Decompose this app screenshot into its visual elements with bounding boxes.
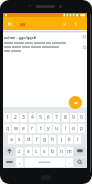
button[interactable]: [4, 158, 15, 167]
button[interactable]: v: [41, 147, 48, 156]
button[interactable]: l: [74, 135, 81, 144]
button[interactable]: [3, 17, 87, 30]
staticText: i: [65, 125, 67, 132]
button[interactable]: g: [41, 135, 48, 144]
staticText: 5: [39, 114, 42, 121]
button[interactable]: f: [33, 135, 40, 144]
button[interactable]: 0: [78, 113, 85, 122]
button[interactable]: [69, 96, 82, 109]
staticText: 2: [14, 114, 17, 121]
button[interactable]: 8: [62, 113, 69, 122]
button[interactable]: 4: [29, 113, 36, 122]
button[interactable]: w: [12, 124, 19, 133]
staticText: q: [6, 125, 10, 132]
staticText: j: [61, 136, 63, 143]
button[interactable]: ,: [16, 158, 23, 167]
staticText: o: [72, 125, 76, 132]
button[interactable]: b: [49, 147, 56, 156]
staticText: y: [47, 125, 50, 132]
staticText: u: [55, 125, 59, 132]
staticText: n: [60, 148, 64, 155]
button[interactable]: o: [70, 124, 77, 133]
button[interactable]: d: [25, 135, 32, 144]
staticText: e: [22, 125, 25, 132]
button[interactable]: j: [58, 135, 65, 144]
staticText: r: [31, 125, 34, 132]
staticText: b: [51, 148, 55, 155]
staticText: 7: [55, 114, 58, 121]
staticText: 3: [22, 114, 25, 121]
staticText: ,: [19, 159, 21, 166]
button[interactable]: n: [58, 147, 65, 156]
staticText: z: [18, 148, 21, 155]
staticText: d: [27, 136, 31, 143]
button[interactable]: s: [16, 135, 23, 144]
staticText: .: [69, 159, 71, 166]
staticText: zolme - ggc/qqcb: [4, 35, 37, 40]
staticText: 8: [64, 114, 67, 121]
button[interactable]: 7: [53, 113, 60, 122]
button[interactable]: z: [16, 147, 23, 156]
button[interactable]: 6: [45, 113, 52, 122]
staticText: m: [67, 148, 72, 155]
button[interactable]: 5: [37, 113, 44, 122]
button[interactable]: k: [66, 135, 73, 144]
button[interactable]: p: [78, 124, 85, 133]
staticText: 0: [80, 114, 83, 121]
button[interactable]: r: [29, 124, 36, 133]
button[interactable]: 9: [70, 113, 77, 122]
staticText: c: [35, 148, 38, 155]
button[interactable]: y: [45, 124, 52, 133]
button[interactable]: c: [33, 147, 40, 156]
button[interactable]: e: [20, 124, 27, 133]
button[interactable]: i: [62, 124, 69, 133]
button[interactable]: 2: [12, 113, 19, 122]
staticText: v: [43, 148, 46, 155]
staticText: a: [10, 136, 13, 143]
staticText: s: [18, 136, 21, 143]
button[interactable]: m: [66, 147, 73, 156]
staticText: l: [77, 136, 79, 143]
button[interactable]: [4, 147, 15, 156]
button[interactable]: u: [53, 124, 60, 133]
staticText: 6: [47, 114, 50, 121]
staticText: g: [43, 136, 47, 143]
button[interactable]: a: [8, 135, 15, 144]
button[interactable]: q: [4, 124, 11, 133]
button[interactable]: h: [49, 135, 56, 144]
staticText: h: [51, 136, 55, 143]
button[interactable]: [74, 147, 86, 156]
button[interactable]: zolme - ggc/qqcb: [3, 33, 87, 42]
button[interactable]: 3: [20, 113, 27, 122]
staticText: t: [40, 125, 42, 132]
button[interactable]: 1: [4, 113, 11, 122]
staticText: 9: [72, 114, 75, 121]
staticText: 4: [31, 114, 34, 121]
button[interactable]: [74, 158, 86, 167]
button[interactable]: .: [66, 158, 73, 167]
staticText: p: [80, 125, 84, 132]
staticText: k: [68, 136, 71, 143]
staticText: f: [36, 136, 38, 143]
staticText: x: [27, 148, 30, 155]
staticText: 1: [6, 114, 9, 121]
staticText: w: [14, 125, 18, 132]
button[interactable]: [25, 158, 65, 167]
button[interactable]: t: [37, 124, 44, 133]
button[interactable]: x: [25, 147, 32, 156]
